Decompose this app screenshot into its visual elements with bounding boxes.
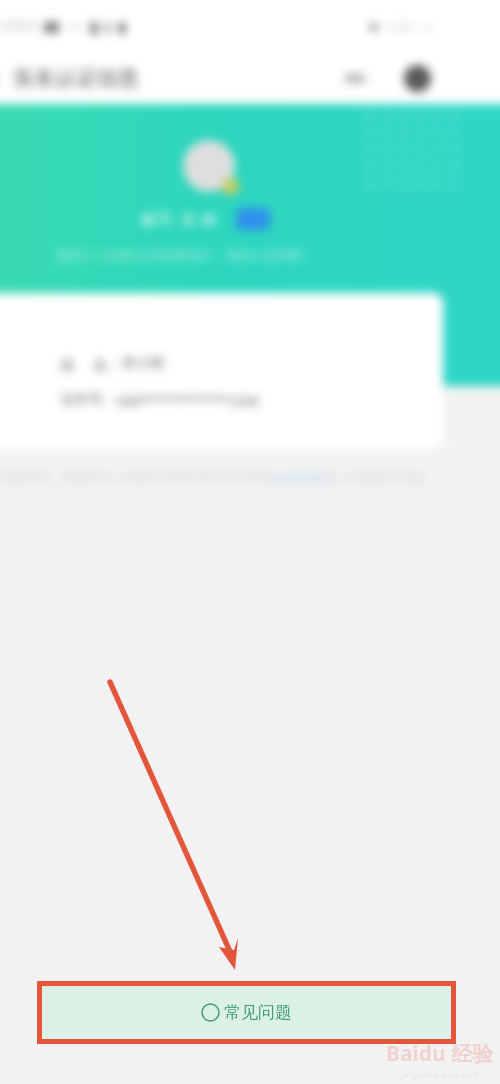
staticText: jingyan.baidu.com: [401, 1068, 479, 1080]
staticText: ▮: [118, 18, 127, 35]
staticText: ▮: [90, 18, 99, 35]
staticText: 常见问题: [224, 1002, 292, 1023]
staticText: ▮▮: [44, 18, 60, 34]
staticText: 证件号：: [61, 391, 117, 409]
staticText: 您的个人信息已经加密保护，请放心使用吧: [56, 247, 303, 263]
staticText: 实名认证信息: [13, 65, 139, 91]
staticText: 420***********1234: [117, 391, 258, 410]
staticText: ▮: [104, 19, 112, 34]
staticText: 姓 名：: [61, 355, 122, 374]
staticText: 账号 名 称: [141, 208, 218, 230]
staticText: 点击此处: [275, 470, 325, 486]
staticText: ●: [369, 20, 379, 33]
button[interactable]: 常见问题: [42, 986, 451, 1039]
staticText: 中国移动: [0, 19, 39, 33]
staticText: 李小明: [122, 355, 164, 373]
staticText: Baidu 经验: [386, 1039, 494, 1068]
